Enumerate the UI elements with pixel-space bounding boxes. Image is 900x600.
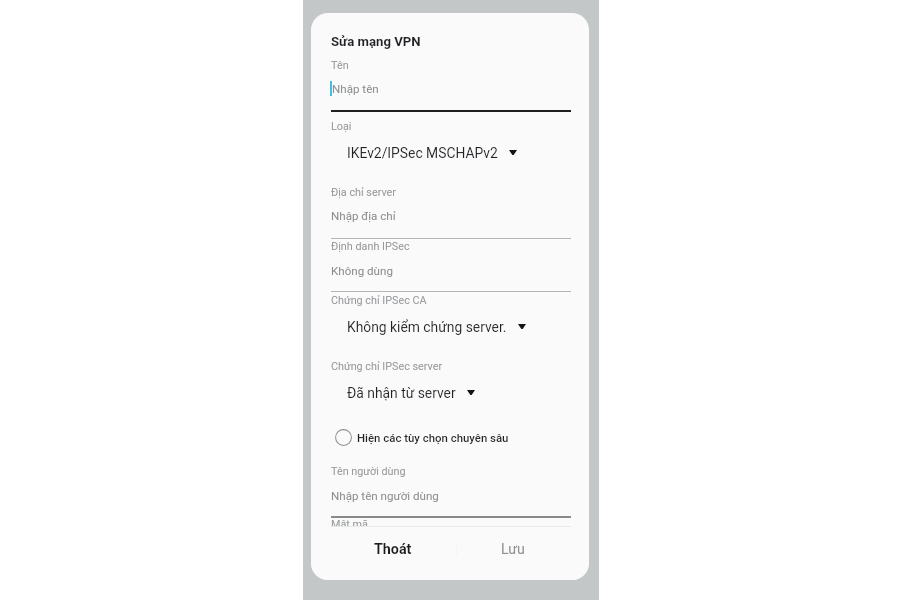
button[interactable]: Thoát: [351, 540, 455, 569]
button[interactable]: IKEv2/IPSec MSCHAPv2: [337, 141, 525, 171]
staticText: Định danh IPSec: [331, 240, 410, 253]
staticText: Nhập tên người dùng: [331, 489, 439, 503]
button[interactable]: Không kiểm chứng server.: [337, 315, 534, 345]
staticText: Chứng chỉ IPSec CA: [331, 294, 427, 307]
staticText: Mật mã: [331, 518, 368, 527]
staticText: Địa chỉ server: [331, 186, 396, 199]
staticText: Sửa mạng VPN: [331, 34, 421, 49]
staticText: Nhập tên: [332, 82, 379, 96]
button[interactable]: Tên người dùng: [331, 465, 571, 518]
button[interactable]: Hiện các tùy chọn chuyên sâu: [331, 424, 513, 454]
button[interactable]: Lưu: [457, 540, 561, 569]
staticText: Chứng chỉ IPSec server: [331, 360, 443, 373]
staticText: Nhập địa chỉ: [331, 209, 396, 223]
button[interactable]: Tên: [331, 59, 571, 112]
staticText: IKEv2/IPSec MSCHAPv2: [347, 145, 498, 161]
staticText: Thoát: [374, 541, 412, 558]
staticText: Tên: [331, 59, 349, 72]
staticText: Không kiểm chứng server.: [347, 319, 507, 335]
staticText: Loại: [331, 120, 352, 133]
button[interactable]: Định danh IPSec: [331, 240, 571, 293]
staticText: Tên người dùng: [331, 465, 406, 478]
staticText: Lưu: [501, 541, 525, 558]
button[interactable]: Địa chỉ server: [331, 186, 571, 239]
staticText: Không dùng: [331, 264, 393, 278]
button[interactable]: Đã nhận từ server: [337, 381, 483, 411]
staticText: Hiện các tùy chọn chuyên sâu: [357, 431, 509, 444]
staticText: Đã nhận từ server: [347, 385, 456, 401]
